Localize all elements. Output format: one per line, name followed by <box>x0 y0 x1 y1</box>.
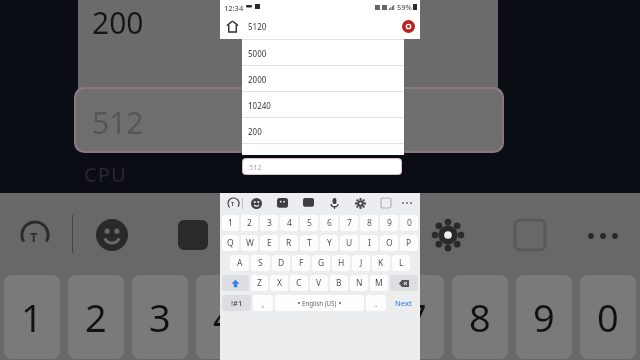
button[interactable]: . <box>366 295 386 311</box>
button[interactable]: W <box>241 235 258 251</box>
staticText: , <box>262 298 265 309</box>
staticText: 8 <box>469 291 491 343</box>
staticText: Y <box>327 237 332 249</box>
button[interactable]: U <box>340 235 358 251</box>
staticText: !#1 <box>231 298 243 308</box>
button[interactable]: 2 <box>241 215 258 231</box>
staticText: 6 <box>341 291 363 343</box>
button[interactable]: V <box>310 275 328 291</box>
staticText: T <box>307 237 312 249</box>
staticText: D <box>278 257 285 269</box>
button[interactable]: Y <box>320 235 338 251</box>
button[interactable]: A <box>230 255 249 271</box>
button[interactable]: Translate <box>225 195 241 211</box>
button[interactable]: Q <box>222 235 239 251</box>
staticText: J <box>360 257 363 269</box>
button[interactable]: 1 <box>222 215 239 231</box>
staticText: K <box>378 257 384 269</box>
button[interactable]: Backspace <box>390 275 418 291</box>
staticText: 2 <box>247 217 252 229</box>
button[interactable]: Voice input <box>326 195 342 211</box>
button[interactable]: T <box>300 235 318 251</box>
button[interactable]: H <box>332 255 350 271</box>
button[interactable]: 8 <box>360 215 378 231</box>
staticText: 9 <box>387 217 392 229</box>
button[interactable]: 7 <box>340 215 358 231</box>
staticText: N <box>356 277 363 289</box>
staticText: 3 <box>267 217 272 229</box>
button[interactable]: I <box>360 235 378 251</box>
button[interactable]: Z <box>251 275 268 291</box>
staticText: 1 <box>228 217 233 229</box>
button[interactable]: 3 <box>260 215 278 231</box>
staticText: T <box>231 200 235 207</box>
button[interactable]: 4 <box>280 215 298 231</box>
staticText: English (US) <box>302 299 337 307</box>
staticText: X <box>277 277 282 289</box>
staticText: F <box>299 257 304 269</box>
staticText: S <box>258 257 263 269</box>
button[interactable]: 2000 <box>242 66 404 92</box>
button[interactable]: , <box>253 295 273 311</box>
button[interactable]: D <box>272 255 290 271</box>
button[interactable]: N <box>350 275 368 291</box>
button[interactable]: More options <box>400 195 416 211</box>
staticText: B <box>336 277 342 289</box>
button[interactable]: P <box>400 235 418 251</box>
button[interactable]: F <box>292 255 310 271</box>
staticText: 512 <box>92 102 144 143</box>
button[interactable]: !#1 <box>222 295 251 311</box>
staticText: 0 <box>597 291 619 343</box>
button[interactable]: Record <box>399 17 417 35</box>
button[interactable]: 5120 <box>242 13 398 39</box>
button[interactable]: M <box>370 275 388 291</box>
button[interactable]: S <box>251 255 270 271</box>
button[interactable]: C <box>290 275 308 291</box>
button[interactable]: O <box>380 235 398 251</box>
button[interactable]: English (US) <box>275 295 364 311</box>
button[interactable]: 0 <box>400 215 418 231</box>
button[interactable]: Home <box>222 16 242 36</box>
staticText: R <box>286 237 292 249</box>
button[interactable]: 5 <box>300 215 318 231</box>
staticText: 2 <box>85 291 107 343</box>
button[interactable]: 9 <box>380 215 398 231</box>
staticText: 512 <box>249 162 262 172</box>
button[interactable]: Stickers <box>274 195 290 211</box>
button[interactable]: E <box>260 235 278 251</box>
button[interactable]: 200 <box>242 118 404 144</box>
staticText: W <box>246 237 254 249</box>
button[interactable]: X <box>270 275 288 291</box>
button[interactable]: Shift <box>222 275 249 291</box>
staticText: 12:34 <box>224 3 244 13</box>
staticText: Next <box>395 298 412 308</box>
staticText: 10240 <box>248 100 271 111</box>
button[interactable]: 512 <box>243 159 401 174</box>
button[interactable]: Next <box>388 295 418 311</box>
button[interactable]: L <box>392 255 410 271</box>
staticText: 8 <box>367 217 372 229</box>
button[interactable]: GIF <box>300 195 316 211</box>
button[interactable]: K <box>372 255 390 271</box>
button[interactable]: Clipboard <box>378 195 394 211</box>
staticText: U <box>346 237 353 249</box>
button[interactable]: R <box>280 235 298 251</box>
staticText: M <box>375 277 383 289</box>
button[interactable]: Emoji <box>248 195 264 211</box>
staticText: P <box>406 237 412 249</box>
button[interactable]: 6 <box>320 215 338 231</box>
staticText: 0 <box>407 217 412 229</box>
staticText: 200 <box>92 2 144 43</box>
button[interactable]: 5000 <box>242 40 404 66</box>
staticText: A <box>237 257 243 269</box>
staticText: 6 <box>327 217 332 229</box>
button[interactable]: J <box>352 255 370 271</box>
staticText: 9 <box>533 291 555 343</box>
staticText: I <box>368 237 371 249</box>
staticText: G <box>318 257 325 269</box>
button[interactable]: 10240 <box>242 92 404 118</box>
button[interactable]: B <box>330 275 348 291</box>
staticText: 5 <box>307 217 312 229</box>
button[interactable]: Settings <box>352 195 368 211</box>
button[interactable]: G <box>312 255 330 271</box>
